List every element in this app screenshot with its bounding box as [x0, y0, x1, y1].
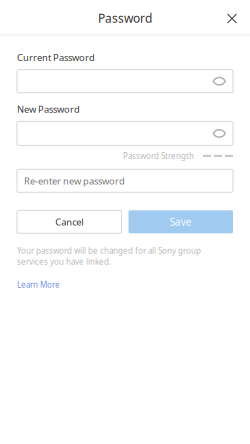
staticText: Save [170, 215, 192, 229]
staticText: Password Strength [123, 150, 194, 161]
staticText: Cancel [55, 215, 83, 228]
button[interactable]: Cancel [17, 210, 121, 233]
staticText: New Password [17, 103, 80, 115]
button[interactable]: Save [128, 210, 233, 233]
staticText: Password [98, 10, 152, 26]
button[interactable]: Close [220, 6, 244, 30]
staticText: Learn More [17, 279, 60, 290]
staticText: Re-enter new password [24, 174, 125, 187]
staticText: Your password will be changed for all So… [17, 245, 201, 267]
button[interactable]: Learn More [17, 279, 60, 290]
staticText: Current Password [17, 51, 95, 64]
